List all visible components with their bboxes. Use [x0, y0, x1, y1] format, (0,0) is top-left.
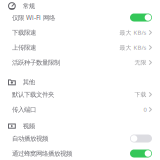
button[interactable]: 传入端口: [0, 102, 160, 117]
staticText: 通过蜂窝网络播放视频: [12, 149, 72, 158]
staticText: 0: [143, 105, 146, 114]
staticText: 下载限速: [12, 28, 36, 37]
staticText: 上传限速: [12, 43, 36, 52]
staticText: 其他: [23, 77, 35, 87]
button[interactable]: 默认下载文件夹: [0, 87, 160, 102]
staticText: 下载: [134, 90, 146, 99]
staticText: 无限: [134, 58, 146, 67]
button[interactable]: 上传限速: [0, 40, 160, 55]
staticText: 默认下载文件夹: [12, 90, 54, 99]
button[interactable]: 下载限速: [0, 25, 160, 40]
staticText: 最大 KB/s: [119, 28, 146, 37]
button[interactable]: 通过蜂窝网络播放视频: [0, 146, 160, 160]
staticText: 传入端口: [12, 105, 36, 114]
button[interactable]: 仅限 Wi-Fi 网络: [0, 10, 160, 25]
staticText: 最大 KB/s: [119, 43, 146, 52]
staticText: 常规: [23, 1, 35, 11]
staticText: 视频: [23, 121, 35, 131]
staticText: 自动播放视频: [12, 134, 48, 143]
button[interactable]: 活跃种子数量限制: [0, 55, 160, 70]
staticText: 活跃种子数量限制: [12, 58, 60, 67]
staticText: 仅限 Wi-Fi 网络: [12, 12, 55, 23]
button[interactable]: 自动播放视频: [0, 131, 160, 146]
